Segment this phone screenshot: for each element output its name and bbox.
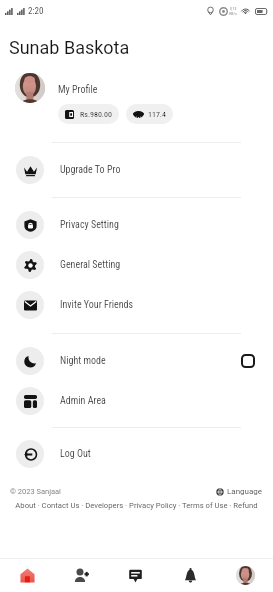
- button[interactable]: Log Out: [0, 434, 273, 474]
- button[interactable]: Privacy Setting: [0, 205, 273, 245]
- button[interactable]: Profile: [218, 559, 273, 592]
- staticText: Upgrade To Pro: [60, 164, 121, 176]
- staticText: Sunab Baskota: [9, 37, 130, 58]
- button[interactable]: Night mode toggle: [241, 354, 255, 368]
- staticText: Admin Area: [60, 395, 106, 407]
- button[interactable]: Upgrade To Pro: [0, 143, 273, 197]
- staticText: © 2023 Sanjaal: [10, 487, 61, 496]
- staticText: Rs.980.00: [80, 110, 112, 119]
- staticText: My Profile: [58, 84, 98, 96]
- staticText: Privacy Setting: [60, 219, 119, 231]
- button[interactable]: Night mode: [0, 341, 273, 381]
- staticText: 2:20: [28, 6, 44, 17]
- staticText: Language: [227, 487, 263, 496]
- staticText: 117.4: [148, 110, 166, 119]
- staticText: Night mode: [60, 355, 106, 367]
- staticText: General Setting: [60, 259, 121, 271]
- button[interactable]: Notifications: [163, 559, 218, 592]
- button[interactable]: My Profile: [0, 73, 273, 124]
- staticText: Log Out: [60, 448, 91, 460]
- button[interactable]: Admin Area: [0, 381, 273, 421]
- button[interactable]: 117.4: [126, 104, 173, 124]
- staticText: About · Contact Us · Developers · Privac…: [0, 501, 273, 510]
- button[interactable]: General Setting: [0, 245, 273, 285]
- button[interactable]: Home: [0, 559, 54, 592]
- staticText: Invite Your Friends: [60, 299, 134, 311]
- button[interactable]: Language: [216, 487, 263, 496]
- button[interactable]: Invite Your Friends: [0, 285, 273, 325]
- staticText: 0,13 KB/s: [229, 6, 237, 16]
- button[interactable]: Messages: [108, 559, 163, 592]
- button[interactable]: Rs.980.00: [58, 104, 119, 124]
- button[interactable]: Add friend: [54, 559, 108, 592]
